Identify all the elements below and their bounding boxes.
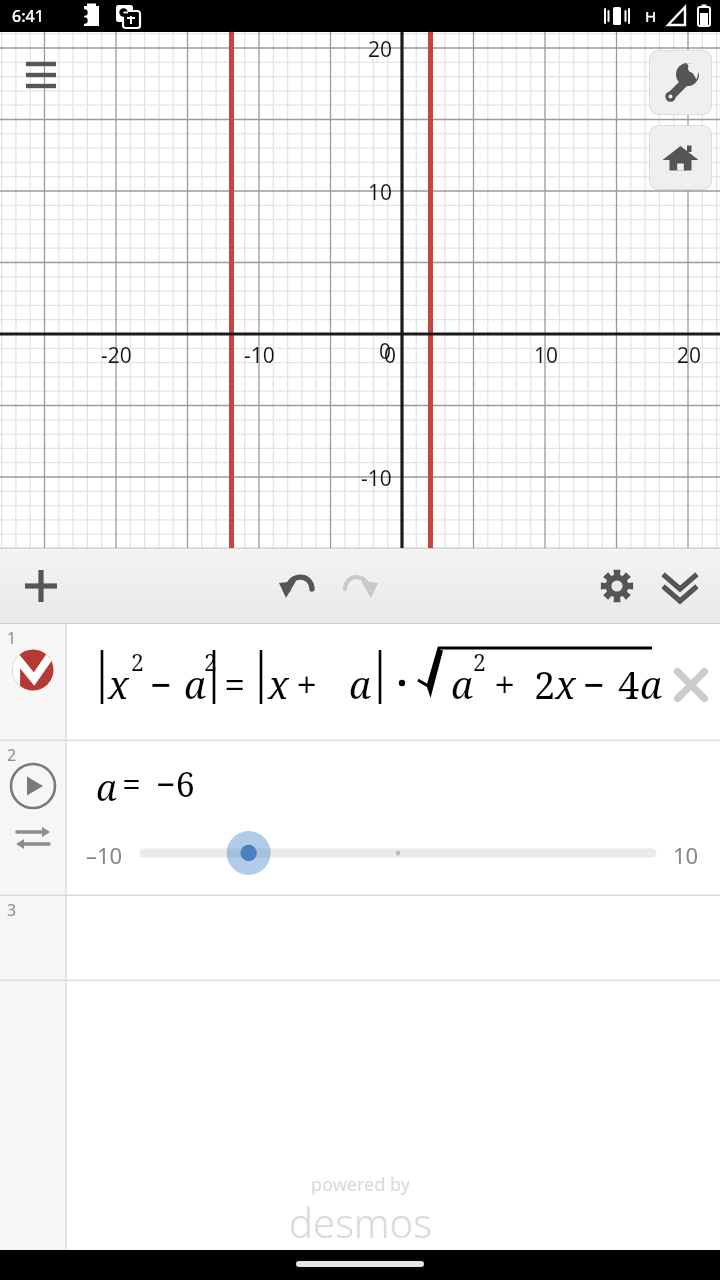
- button[interactable]: 2: [0, 741, 720, 896]
- button[interactable]: 3: [0, 896, 720, 981]
- button[interactable]: Home gesture: [296, 1261, 424, 1267]
- staticText: 0: [384, 341, 397, 370]
- staticText: 10: [673, 840, 699, 870]
- button[interactable]: Settings: [586, 552, 648, 620]
- staticText: 2: [534, 658, 556, 710]
- staticText: −6: [156, 761, 195, 807]
- staticText: 6:41: [12, 5, 44, 27]
- staticText: 3: [7, 899, 17, 921]
- staticText: 1: [7, 627, 17, 649]
- staticText: +: [494, 658, 516, 710]
- staticText: 10: [368, 178, 393, 207]
- staticText: –10: [86, 840, 123, 870]
- staticText: +: [296, 658, 318, 710]
- button[interactable]: Collapse keypad: [649, 552, 711, 620]
- button[interactable]: Reverse direction: [11, 816, 55, 860]
- staticText: H: [645, 6, 657, 26]
- button[interactable]: 1: [0, 624, 720, 741]
- staticText: x: [108, 658, 129, 710]
- staticText: 0: [379, 337, 392, 366]
- button[interactable]: Undo: [266, 552, 328, 620]
- staticText: a: [96, 763, 117, 812]
- staticText: =: [122, 761, 142, 807]
- staticText: 20: [368, 35, 393, 64]
- staticText: x: [555, 658, 576, 710]
- button[interactable]: Toggle curve: [11, 648, 55, 692]
- staticText: −: [583, 658, 606, 710]
- button[interactable]: Add expression: [10, 552, 72, 620]
- button[interactable]: Graph settings: [649, 50, 712, 115]
- staticText: =: [224, 658, 246, 710]
- button[interactable]: Play slider: [8, 761, 58, 811]
- staticText: a: [451, 658, 474, 710]
- staticText: 2: [7, 744, 17, 766]
- staticText: 2: [204, 646, 217, 677]
- button[interactable]: Redo: [329, 552, 391, 620]
- staticText: powered by: [311, 1172, 410, 1197]
- staticText: x: [268, 658, 289, 710]
- staticText: -10: [244, 341, 275, 370]
- button[interactable]: Delete expression: [667, 661, 715, 709]
- staticText: a: [184, 658, 207, 710]
- button[interactable]: Slider a: [140, 827, 656, 879]
- staticText: −: [150, 658, 173, 710]
- staticText: 2: [131, 646, 144, 677]
- staticText: desmos: [289, 1195, 432, 1249]
- staticText: a: [349, 658, 372, 710]
- staticText: a: [640, 658, 663, 710]
- staticText: -10: [361, 464, 392, 493]
- staticText: -20: [101, 341, 132, 370]
- button[interactable]: Menu: [16, 50, 66, 100]
- staticText: 4: [618, 658, 640, 710]
- staticText: 2: [473, 646, 486, 677]
- staticText: 20: [677, 341, 702, 370]
- staticText: 10: [534, 341, 559, 370]
- button[interactable]: Default zoom: [649, 125, 712, 190]
